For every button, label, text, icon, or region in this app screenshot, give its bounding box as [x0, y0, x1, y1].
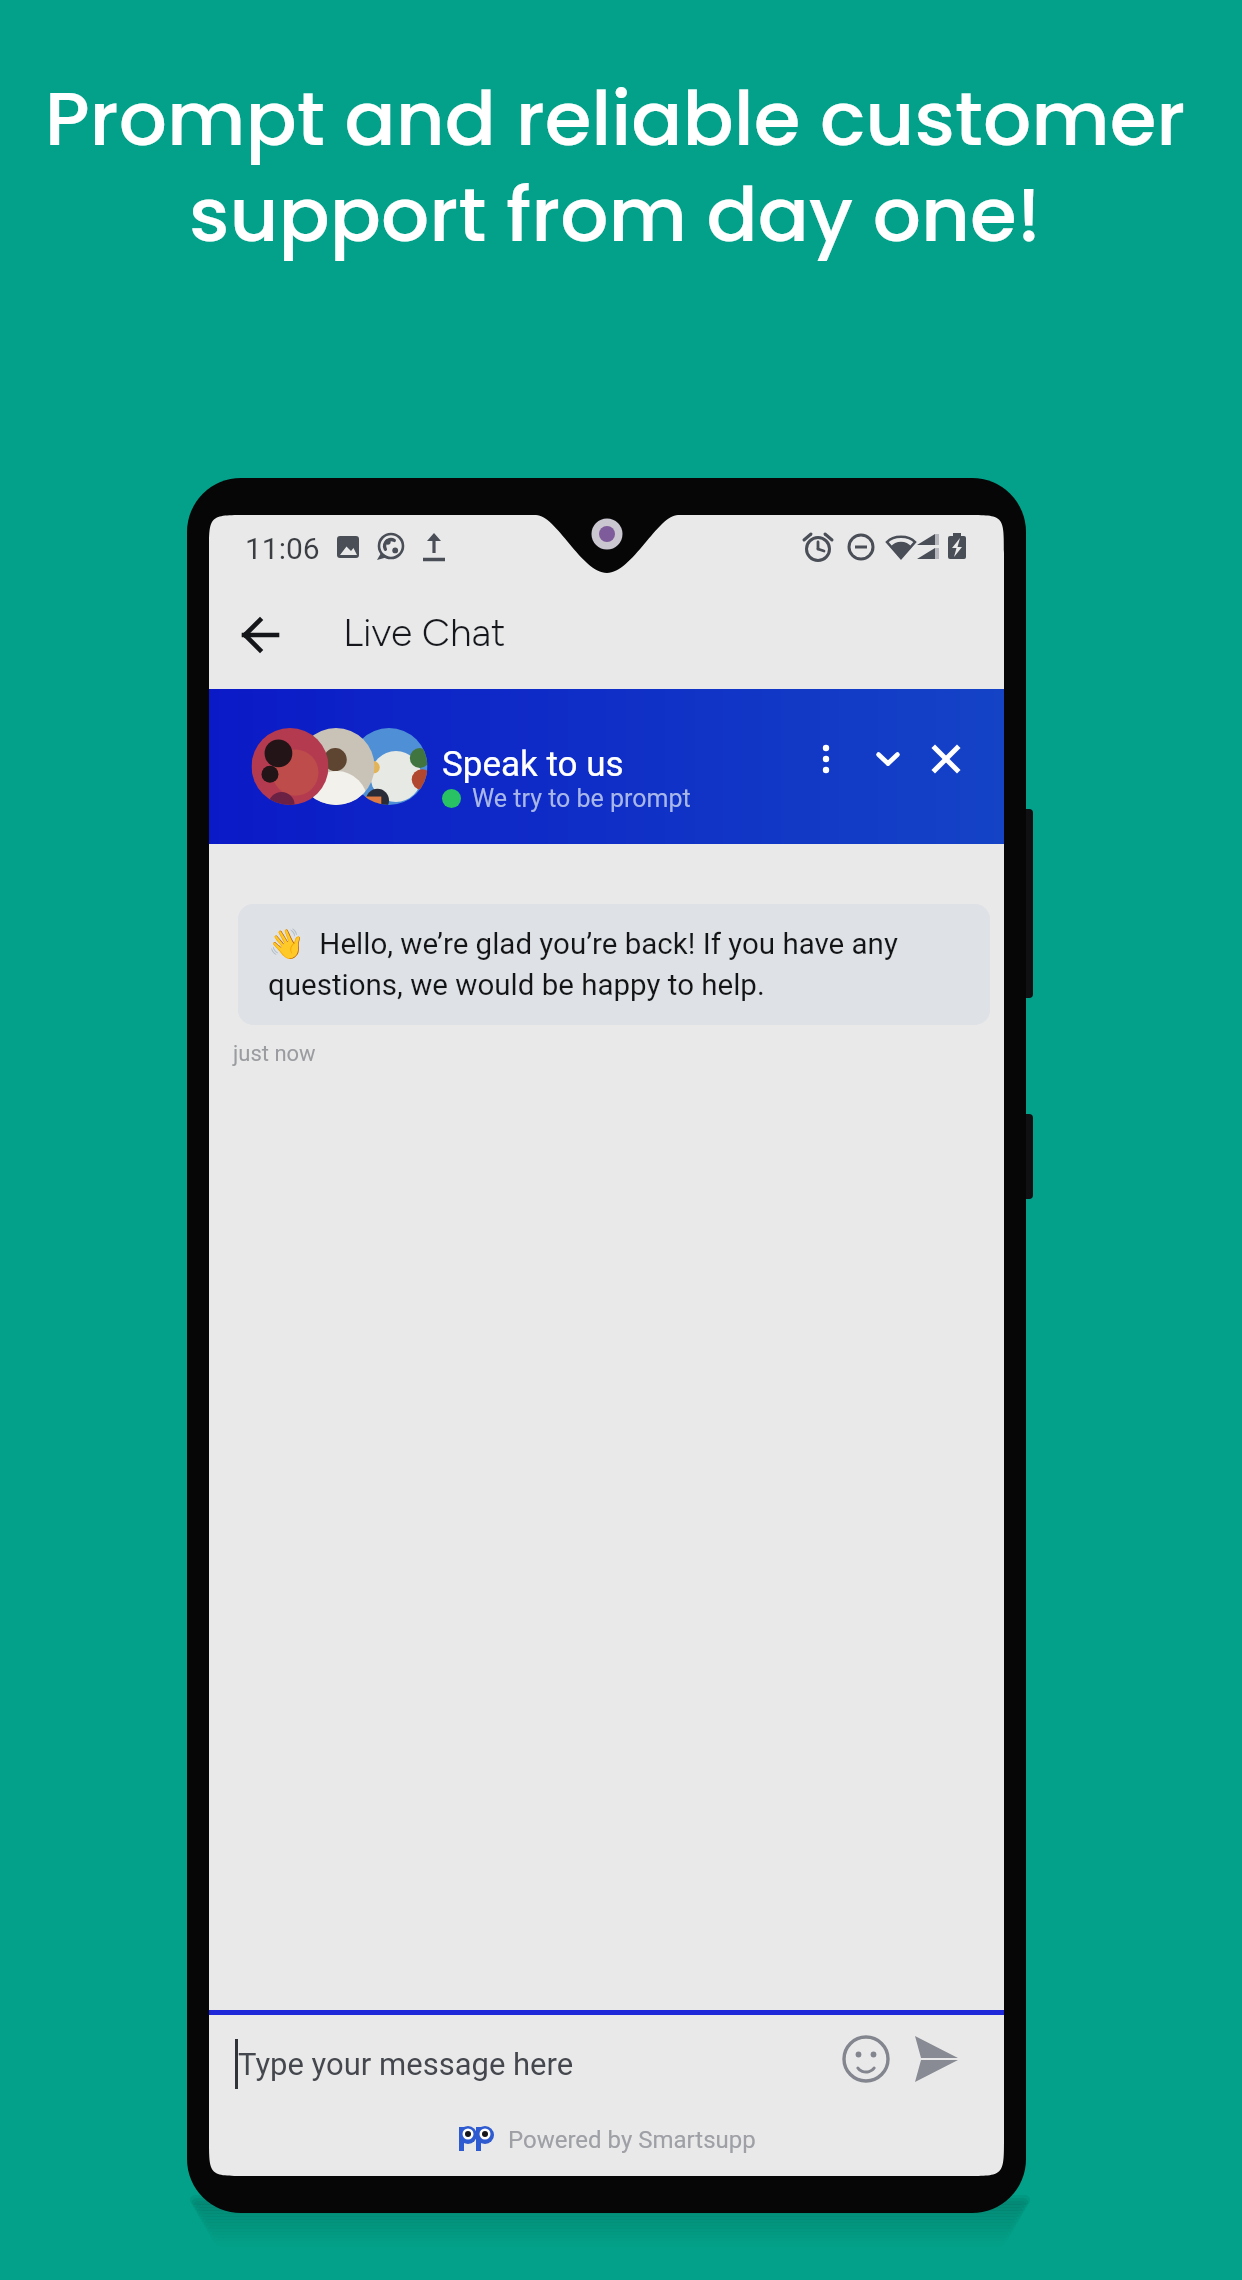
button[interactable]: Close [916, 729, 976, 789]
button[interactable]: Emoji [836, 2029, 896, 2089]
button[interactable]: Back [231, 606, 289, 664]
staticText: Prompt and reliable customer support fro… [0, 66, 1236, 268]
staticText: 11:06 [245, 531, 320, 566]
staticText: Type your message here [238, 2046, 574, 2082]
staticText: just now [233, 1041, 316, 1067]
button[interactable]: Minimize [858, 729, 918, 789]
staticText: Powered by Smartsupp [508, 2126, 756, 2154]
staticText: 👋 Hello, we’re glad you’re back! If you … [268, 927, 970, 1003]
staticText: Live Chat [343, 609, 506, 656]
button[interactable]: More options [796, 729, 856, 789]
staticText: Speak to us [442, 744, 624, 785]
staticText: We try to be prompt [472, 784, 691, 813]
button[interactable]: Send [906, 2029, 966, 2089]
